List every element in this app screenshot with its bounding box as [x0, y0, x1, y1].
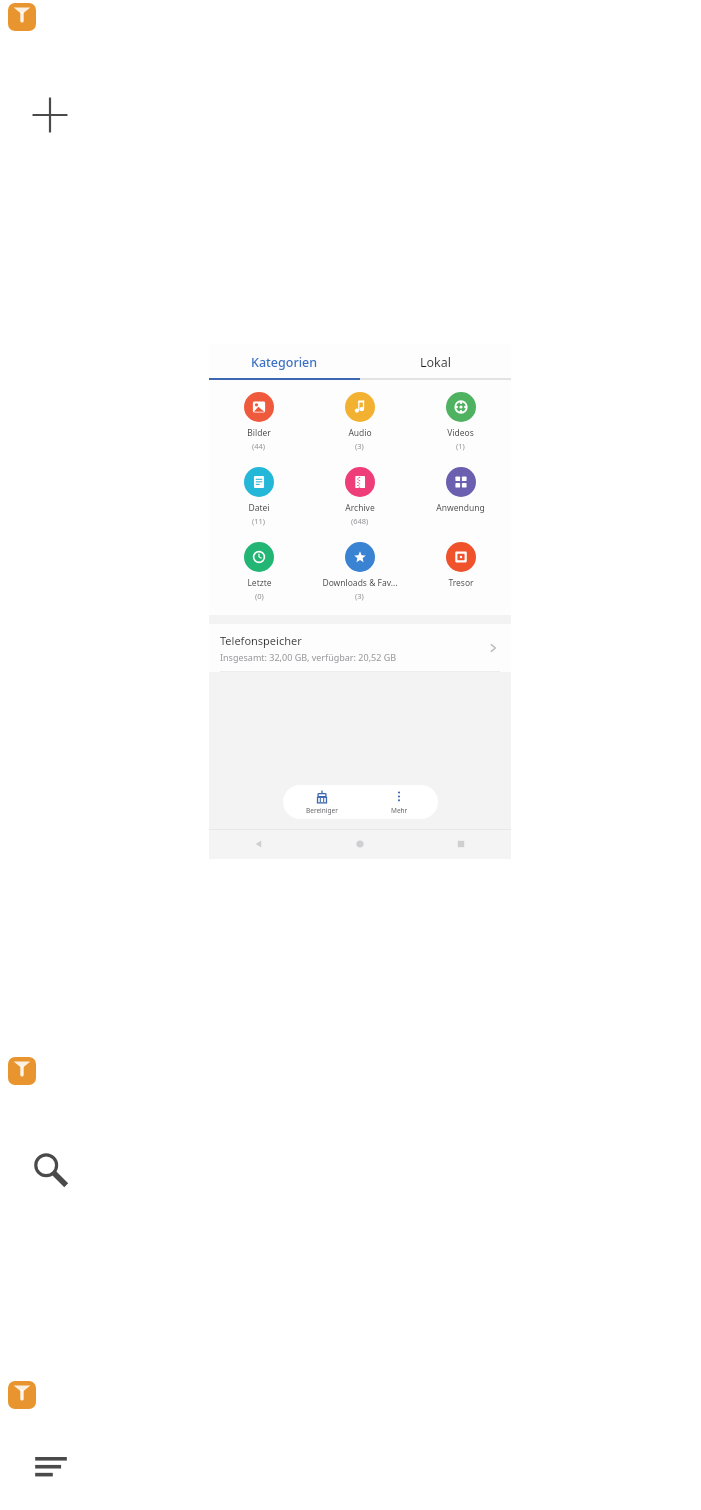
button[interactable]: Lokal — [360, 344, 511, 380]
staticText: Archive — [345, 502, 375, 514]
button[interactable]: Recents — [410, 829, 511, 859]
button[interactable]: Audio — [309, 388, 410, 455]
button[interactable]: Mehr — [360, 785, 438, 819]
button[interactable]: Search — [31, 1150, 71, 1190]
button[interactable]: Telefonspeicher — [209, 624, 511, 672]
button[interactable]: Bereiniger — [283, 785, 360, 819]
button[interactable]: Add — [31, 96, 69, 134]
staticText: (44) — [252, 441, 266, 451]
button[interactable]: Sort — [33, 1448, 69, 1484]
staticText: Lokal — [420, 354, 452, 371]
button[interactable]: Datei — [209, 463, 309, 530]
button[interactable]: Letzte — [209, 538, 309, 605]
staticText: Tresor — [448, 577, 474, 589]
button[interactable]: Anwendung — [410, 463, 511, 530]
button[interactable]: App icon — [8, 1057, 36, 1085]
staticText: (11) — [252, 516, 266, 526]
staticText: Kategorien — [251, 354, 318, 371]
staticText: Telefonspeicher — [220, 633, 302, 648]
staticText: Insgesamt: 32,00 GB, verfügbar: 20,52 GB — [220, 651, 397, 663]
button[interactable]: Archive — [309, 463, 410, 530]
button[interactable]: Bilder — [209, 388, 309, 455]
staticText: Mehr — [391, 806, 408, 815]
staticText: Downloads & Fav... — [322, 577, 398, 589]
staticText: Bilder — [247, 427, 271, 439]
button[interactable]: Home — [309, 829, 410, 859]
staticText: Bereiniger — [306, 806, 338, 815]
staticText: Audio — [348, 427, 372, 439]
staticText: Videos — [447, 427, 474, 439]
button[interactable]: App icon — [8, 1381, 36, 1409]
button[interactable]: Tresor — [410, 538, 511, 605]
button[interactable]: Downloads & Fav... — [309, 538, 410, 605]
staticText: (648) — [351, 516, 369, 526]
staticText: (3) — [355, 441, 364, 451]
staticText: (0) — [255, 591, 264, 601]
button[interactable]: Videos — [410, 388, 511, 455]
staticText: Letzte — [247, 577, 272, 589]
staticText: (1) — [456, 441, 465, 451]
staticText: (3) — [355, 591, 364, 601]
button[interactable]: App icon — [8, 3, 36, 31]
button[interactable]: Back — [209, 829, 309, 859]
staticText: Anwendung — [436, 502, 485, 514]
staticText: Datei — [248, 502, 270, 514]
button[interactable]: Kategorien — [209, 344, 360, 380]
